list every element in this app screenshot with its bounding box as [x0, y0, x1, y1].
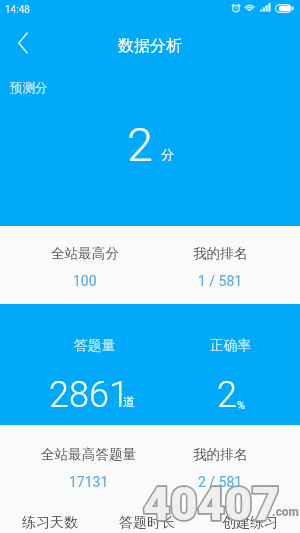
- staticText: 全站最高答题量: [41, 446, 137, 463]
- button[interactable]: 我的排名: [145, 446, 295, 490]
- button[interactable]: 答题时长: [97, 514, 197, 532]
- staticText: 创建练习: [222, 514, 278, 532]
- button[interactable]: 正确率: [156, 337, 300, 416]
- other: Signal: [260, 3, 271, 12]
- button[interactable]: 我的排名: [145, 245, 295, 289]
- staticText: %: [237, 399, 246, 412]
- button[interactable]: 练习天数: [0, 514, 100, 532]
- staticText: 答题时长: [119, 514, 175, 532]
- staticText: 40407: [143, 476, 280, 531]
- staticText: 我的排名: [193, 245, 248, 262]
- staticText: 14:48: [5, 4, 30, 16]
- staticText: 正确率: [210, 337, 252, 354]
- other: Battery: [275, 4, 294, 13]
- staticText: 100: [73, 273, 97, 289]
- staticText: 答题量: [74, 337, 116, 354]
- staticText: 道: [123, 394, 135, 409]
- other: Wi-Fi: [244, 3, 255, 12]
- button[interactable]: 答题量: [20, 337, 170, 416]
- button[interactable]: 全站最高分: [10, 245, 160, 289]
- staticText: 全站最高分: [51, 245, 119, 262]
- staticText: 我的排名: [193, 446, 248, 463]
- other: Alarm: [231, 3, 241, 13]
- staticText: 数据分析: [118, 36, 182, 56]
- button[interactable]: 创建练习: [200, 514, 300, 532]
- staticText: 2: [127, 117, 154, 172]
- button[interactable]: Back: [0, 20, 46, 66]
- staticText: 1 / 581: [198, 273, 243, 289]
- staticText: 2 / 581: [198, 474, 243, 490]
- staticText: 分: [161, 146, 174, 162]
- staticText: 2861: [49, 374, 129, 416]
- staticText: .com: [272, 505, 299, 519]
- staticText: 2: [217, 374, 237, 416]
- staticText: 预测分: [10, 80, 48, 96]
- button[interactable]: 全站最高答题量: [14, 446, 164, 490]
- staticText: 40407: [143, 476, 280, 531]
- staticText: 练习天数: [22, 514, 78, 532]
- staticText: 17131: [69, 474, 109, 490]
